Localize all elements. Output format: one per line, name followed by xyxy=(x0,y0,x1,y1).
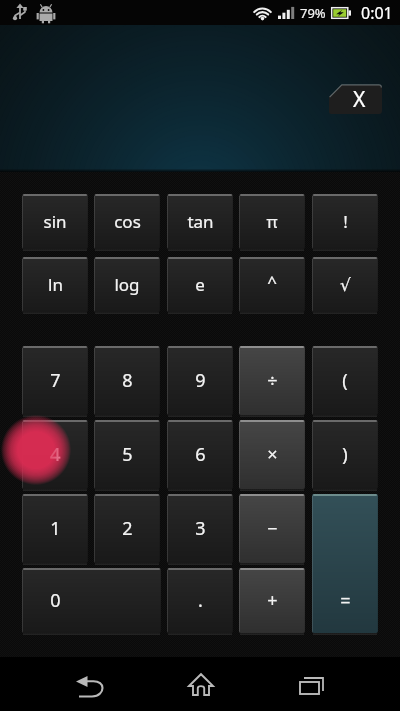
staticText: × xyxy=(267,442,278,467)
button[interactable]: ÷ xyxy=(239,346,305,415)
staticText: 0 xyxy=(50,588,61,613)
staticText: ^ xyxy=(267,270,277,293)
staticText: 4 xyxy=(50,442,61,467)
button[interactable]: 7 xyxy=(22,346,88,415)
staticText: 2 xyxy=(122,516,133,541)
button[interactable]: √ xyxy=(312,257,378,312)
staticText: X xyxy=(353,85,366,114)
staticText: − xyxy=(267,516,278,541)
button[interactable]: 9 xyxy=(167,346,233,415)
button[interactable]: 5 xyxy=(94,420,160,489)
button[interactable]: ) xyxy=(312,420,378,489)
staticText: 0:01 xyxy=(361,2,393,24)
button[interactable]: Home xyxy=(162,660,238,708)
staticText: = xyxy=(340,588,351,613)
staticText: √ xyxy=(340,275,351,295)
button[interactable]: ^ xyxy=(239,257,305,312)
button[interactable]: + xyxy=(239,568,305,633)
staticText: ( xyxy=(342,368,348,393)
staticText: 4 xyxy=(50,442,61,467)
button[interactable]: Recent apps xyxy=(273,660,349,708)
button[interactable]: π xyxy=(239,194,305,249)
staticText: e xyxy=(195,273,205,296)
staticText: ) xyxy=(342,442,348,467)
staticText: sin xyxy=(43,210,67,233)
staticText: 9 xyxy=(195,368,206,393)
staticText: 1 xyxy=(50,516,61,541)
staticText: ! xyxy=(343,210,348,233)
staticText: 79% xyxy=(300,4,326,22)
staticText: ÷ xyxy=(267,368,278,393)
staticText: 6 xyxy=(195,442,206,467)
button[interactable]: 0 xyxy=(22,568,161,633)
button[interactable]: ( xyxy=(312,346,378,415)
button[interactable]: ln xyxy=(22,257,88,312)
staticText: π xyxy=(266,210,278,233)
staticText: cos xyxy=(114,210,141,233)
staticText: 3 xyxy=(195,516,206,541)
button[interactable]: × xyxy=(239,420,305,489)
button[interactable]: log xyxy=(94,257,160,312)
button[interactable]: 6 xyxy=(167,420,233,489)
button[interactable]: 1 xyxy=(22,494,88,563)
button[interactable]: cos xyxy=(94,194,160,249)
button[interactable]: tan xyxy=(167,194,233,249)
staticText: 8 xyxy=(122,368,133,393)
button[interactable]: 4 xyxy=(22,420,88,489)
staticText: log xyxy=(114,273,140,296)
button[interactable]: 2 xyxy=(94,494,160,563)
staticText: ln xyxy=(48,273,63,296)
button[interactable]: 8 xyxy=(94,346,160,415)
button[interactable]: e xyxy=(167,257,233,312)
button[interactable]: Back xyxy=(50,660,130,708)
staticText: + xyxy=(267,588,278,613)
button[interactable]: 3 xyxy=(167,494,233,563)
staticText: 7 xyxy=(50,368,61,393)
staticText: . xyxy=(198,588,203,613)
button[interactable]: − xyxy=(239,494,305,563)
button[interactable]: sin xyxy=(22,194,88,249)
button[interactable]: . xyxy=(167,568,233,633)
staticText: 5 xyxy=(122,442,133,467)
button[interactable]: ! xyxy=(312,194,378,249)
staticText: tan xyxy=(187,210,214,233)
button[interactable]: = xyxy=(312,494,378,633)
button[interactable]: Clear xyxy=(329,84,382,114)
